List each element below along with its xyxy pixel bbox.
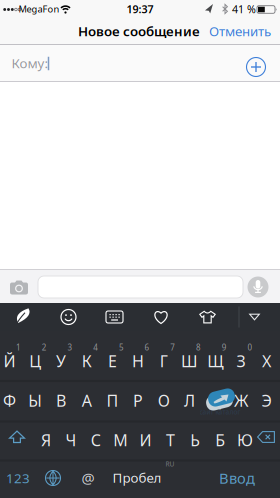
button[interactable]: Н: [126, 340, 151, 381]
staticText: Ж: [234, 390, 248, 411]
staticText: 1: [16, 342, 21, 353]
button[interactable]: Удалить: [251, 419, 280, 455]
button[interactable]: Добавить контакт: [241, 52, 271, 82]
staticText: Ц: [29, 350, 41, 372]
staticText: И: [139, 429, 151, 451]
staticText: Г: [160, 350, 168, 372]
button[interactable]: О: [151, 380, 176, 421]
button[interactable]: TouchPal: [8, 304, 38, 330]
button[interactable]: Ввод: [207, 458, 267, 498]
staticText: 0: [247, 342, 252, 353]
button[interactable]: Ы: [23, 380, 48, 421]
button[interactable]: Ш: [177, 340, 202, 381]
button[interactable]: Е: [100, 340, 125, 381]
staticText: Д: [209, 390, 221, 411]
staticText: 9: [222, 342, 227, 353]
button[interactable]: Х: [254, 340, 279, 381]
staticText: Я: [41, 429, 51, 451]
staticText: А: [82, 390, 92, 411]
staticText: Отменить: [209, 22, 271, 40]
staticText: @: [81, 468, 94, 488]
button[interactable]: Диктовка: [246, 275, 270, 299]
staticText: С: [91, 429, 101, 451]
button[interactable]: 123: [0, 458, 36, 498]
button[interactable]: Камера: [5, 275, 33, 299]
button[interactable]: Ц: [23, 340, 48, 381]
button[interactable]: Ф: [0, 380, 22, 421]
staticText: О: [158, 390, 170, 411]
button[interactable]: Клавиатура: [99, 304, 129, 330]
button[interactable]: А: [74, 380, 99, 421]
staticText: 6: [145, 342, 150, 353]
button[interactable]: Shift: [0, 419, 34, 455]
staticText: Л: [184, 390, 195, 411]
button[interactable]: Б: [208, 419, 232, 460]
staticText: 2: [42, 342, 47, 353]
staticText: М: [113, 429, 128, 451]
staticText: Ь: [190, 429, 200, 451]
staticText: Новое сообщение: [78, 22, 200, 40]
staticText: Кому:: [11, 54, 48, 72]
staticText: Х: [262, 350, 271, 372]
button[interactable]: Ч: [59, 419, 83, 460]
staticText: 8: [196, 342, 201, 353]
button[interactable]: Щ: [203, 340, 228, 381]
staticText: Р: [133, 390, 143, 411]
button[interactable]: Ь: [183, 419, 207, 460]
staticText: 19:37: [126, 2, 153, 16]
button[interactable]: @: [73, 458, 103, 498]
staticText: Т: [166, 429, 175, 451]
staticText: 5: [119, 342, 124, 353]
button[interactable]: Избранное: [146, 304, 176, 330]
button[interactable]: И: [133, 419, 157, 460]
staticText: Й: [4, 350, 16, 372]
button[interactable]: Эмодзи: [53, 304, 83, 330]
staticText: Е: [108, 350, 117, 372]
button[interactable]: Г: [151, 340, 176, 381]
button[interactable]: Д: [203, 380, 228, 421]
button[interactable]: Р: [126, 380, 151, 421]
button[interactable]: Л: [177, 380, 202, 421]
button[interactable]: Э: [254, 380, 279, 421]
staticText: К: [82, 350, 92, 372]
button[interactable]: П: [100, 380, 125, 421]
button[interactable]: Пробел: [82, 457, 192, 497]
staticText: Пробел: [112, 469, 161, 486]
staticText: Ввод: [219, 468, 255, 488]
staticText: П: [106, 390, 118, 411]
button[interactable]: У: [48, 340, 73, 381]
staticText: Б: [215, 429, 225, 451]
button[interactable]: Я: [34, 419, 58, 460]
button[interactable]: Ю: [233, 419, 257, 460]
staticText: 3: [67, 342, 72, 353]
staticText: 41 %: [232, 2, 256, 16]
staticText: Ф: [3, 390, 16, 411]
staticText: У: [56, 350, 66, 372]
staticText: RU: [165, 460, 174, 468]
staticText: Н: [132, 350, 144, 372]
button[interactable]: Свернуть: [239, 304, 269, 330]
button[interactable]: Темы: [192, 304, 222, 330]
staticText: Ы: [28, 390, 42, 411]
staticText: 7: [170, 342, 175, 353]
staticText: Э: [262, 390, 272, 411]
staticText: З: [236, 350, 245, 372]
staticText: Ш: [181, 350, 198, 372]
button[interactable]: З: [228, 340, 253, 381]
button[interactable]: В: [48, 380, 73, 421]
button[interactable]: Ж: [228, 380, 253, 421]
staticText: Ч: [65, 429, 76, 451]
button[interactable]: К: [74, 340, 99, 381]
staticText: MegaFon: [18, 3, 59, 15]
staticText: Ю: [237, 429, 253, 451]
staticText: сайт каталог: [199, 408, 240, 416]
button[interactable]: Т: [158, 419, 182, 460]
button[interactable]: Й: [0, 340, 22, 381]
staticText: 4: [93, 342, 98, 353]
button[interactable]: М: [109, 419, 133, 460]
staticText: 123: [6, 469, 30, 487]
staticText: В: [56, 390, 66, 411]
button[interactable]: Сменить язык: [36, 458, 70, 498]
button[interactable]: С: [84, 419, 108, 460]
button[interactable]: Отменить: [198, 18, 280, 44]
